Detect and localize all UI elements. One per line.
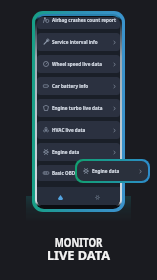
button[interactable]: HVAC live data bbox=[37, 121, 120, 139]
staticText: Service interval info bbox=[52, 39, 98, 45]
button[interactable]: Basic OBD2 bbox=[37, 165, 120, 181]
staticText: Airbag crashes count report bbox=[52, 17, 116, 23]
staticText: Wheel speed live data bbox=[52, 61, 102, 67]
staticText: Engine turbo live data bbox=[52, 105, 103, 111]
staticText: MONITOR bbox=[55, 235, 102, 251]
button[interactable]: Wheel speed live data bbox=[37, 55, 120, 73]
button[interactable]: Car battery info bbox=[37, 77, 120, 95]
button[interactable]: Service interval info bbox=[37, 33, 120, 51]
button[interactable]: Settings bbox=[87, 188, 108, 206]
staticText: Engine data bbox=[92, 168, 120, 174]
staticText: HVAC live data bbox=[52, 127, 86, 133]
button[interactable]: Engine data bbox=[77, 161, 148, 181]
staticText: Basic OBD2 bbox=[52, 170, 78, 176]
button[interactable]: Engine data bbox=[37, 143, 120, 161]
button[interactable]: Engine turbo live data bbox=[37, 99, 120, 117]
staticText: Engine data bbox=[52, 149, 80, 155]
staticText: LIVE DATA bbox=[47, 248, 110, 264]
button[interactable]: Home bbox=[50, 188, 71, 206]
button[interactable]: Airbag crashes count report bbox=[37, 17, 120, 29]
staticText: Car battery info bbox=[52, 83, 89, 89]
